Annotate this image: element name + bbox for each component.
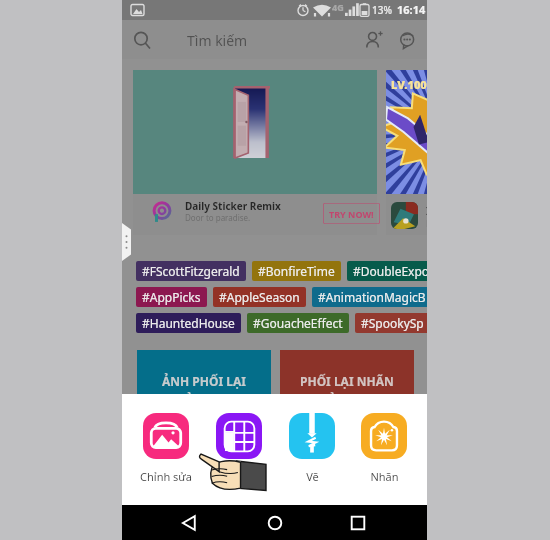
staticText: Door to paradise.: [185, 212, 251, 223]
button[interactable]: Back: [180, 514, 198, 532]
button[interactable]: #GouacheEffect: [247, 313, 349, 333]
staticText: #BonfireTime: [258, 263, 335, 279]
button[interactable]: #BonfireTime: [252, 261, 341, 281]
button[interactable]: LV.100: [386, 70, 427, 235]
button[interactable]: TRY NOW!: [323, 203, 380, 224]
button[interactable]: #FScottFitzgerald: [136, 261, 246, 281]
button[interactable]: #AppleSeason: [213, 287, 306, 307]
button[interactable]: Chỉnh sửa: [131, 413, 201, 484]
button[interactable]: Home: [266, 514, 284, 532]
staticText: #AnimationMagicB: [318, 289, 426, 305]
button[interactable]: #AnimationMagicB: [312, 287, 427, 307]
staticText: Tìm kiếm: [187, 31, 248, 50]
button[interactable]: Add friend: [365, 31, 383, 49]
staticText: Tạo ảnh ghép: [204, 469, 274, 484]
staticText: Daily Sticker Remix: [185, 199, 281, 213]
button[interactable]: Nhãn: [349, 413, 419, 484]
staticText: CỦA BẠN: [177, 392, 232, 408]
staticText: PHỐI LẠI NHÃN: [300, 373, 394, 389]
button[interactable]: Search: [133, 31, 153, 51]
button[interactable]: ẢNH PHỐI LẠI: [137, 350, 271, 410]
staticText: 4G: [332, 1, 344, 13]
staticText: #AppleSeason: [219, 289, 300, 305]
staticText: TRY NOW!: [329, 208, 374, 220]
button[interactable]: #AppPicks: [136, 287, 207, 307]
staticText: LV.100: [391, 77, 427, 92]
staticText: 16:14: [397, 2, 426, 17]
staticText: ẢNH PHỐI LẠI: [162, 373, 246, 389]
button[interactable]: Vẽ: [277, 413, 347, 484]
button[interactable]: Daily Sticker Remix: [133, 70, 377, 235]
button[interactable]: Recent apps: [349, 514, 367, 532]
button[interactable]: Messages: [399, 32, 416, 49]
staticText: Vẽ: [306, 469, 319, 484]
staticText: #HauntedHouse: [142, 315, 235, 331]
staticText: #DoubleExpo: [353, 263, 427, 279]
staticText: #SpookySp: [361, 315, 424, 331]
staticText: Nhãn: [370, 469, 399, 484]
staticText: Chỉnh sửa: [140, 469, 192, 484]
button[interactable]: Tạo ảnh ghép: [204, 413, 274, 484]
button[interactable]: PHỐI LẠI NHÃN: [280, 350, 414, 410]
staticText: 13%: [372, 3, 392, 17]
staticText: #AppPicks: [142, 289, 201, 305]
staticText: #GouacheEffect: [253, 315, 343, 331]
staticText: #FScottFitzgerald: [142, 263, 240, 279]
button[interactable]: #SpookySp: [355, 313, 427, 333]
staticText: Ic: [426, 203, 427, 218]
button[interactable]: #DoubleExpo: [347, 261, 427, 281]
staticText: CỦA BẠN: [320, 392, 375, 408]
button[interactable]: #HauntedHouse: [136, 313, 241, 333]
